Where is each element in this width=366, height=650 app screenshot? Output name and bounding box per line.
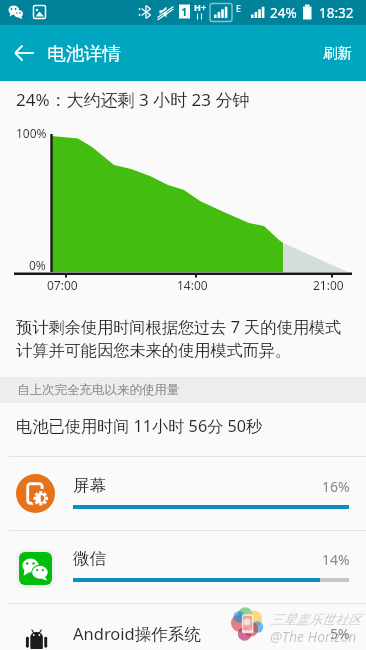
staticText: @The Horizon [270,627,357,646]
button[interactable]: Android操作系统 [0,604,366,650]
staticText: 24% [270,4,297,22]
staticText: 刷新 [323,44,352,62]
staticText: 屏幕 [73,475,106,496]
staticText: 07:00 [47,277,78,293]
staticText: 18:32 [319,4,354,22]
staticText: 自上次完全充电以来的使用量 [17,382,180,398]
staticText: 电池详情 [47,42,121,65]
staticText: 14:00 [177,277,208,293]
staticText: 0% [29,257,46,273]
staticText: 21:00 [313,277,344,293]
button[interactable]: 微信 [0,530,366,603]
staticText: H+ [194,1,207,13]
staticText: 100% [16,125,47,141]
staticText: Android操作系统 [73,622,201,645]
staticText: 微信 [73,548,106,569]
staticText: 电池已使用时间 11小时 56分 50秒 [16,415,263,437]
staticText: 1 [181,4,188,19]
staticText: 14% [322,550,350,569]
staticText: 5% [330,624,350,643]
staticText: E [236,2,242,14]
button[interactable]: 屏幕 [0,457,366,530]
button[interactable]: 刷新 [309,32,366,74]
button[interactable]: Back [0,29,48,77]
staticText: 预计剩余使用时间根据您过去 7 天的使用模式 计算并可能因您未来的使用模式而异。 [16,316,342,361]
staticText: 三星盖乐世社区 [270,611,361,627]
staticText: 16% [322,477,350,496]
staticText: 24%：大约还剩 3 小时 23 分钟 [16,88,250,111]
